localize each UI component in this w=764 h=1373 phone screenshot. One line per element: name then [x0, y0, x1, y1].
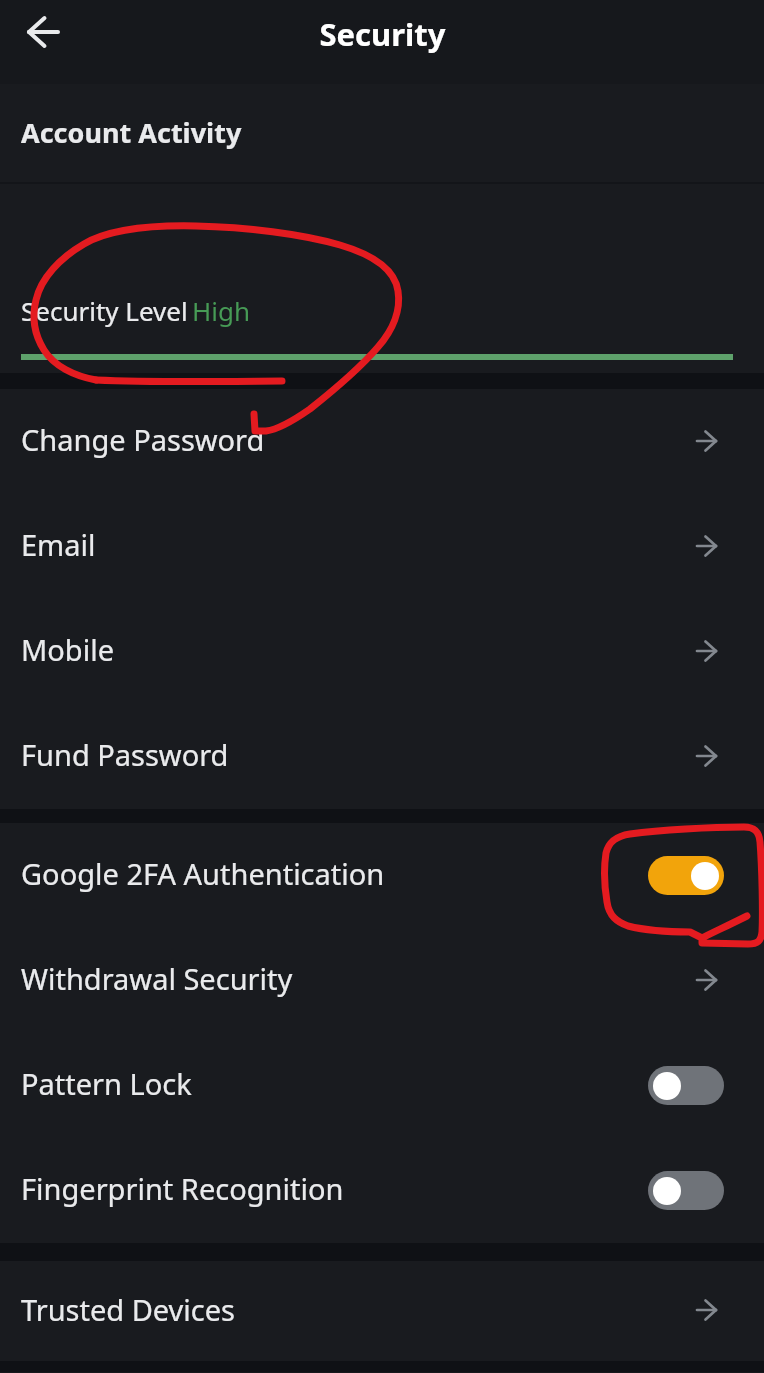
button[interactable]: Fingerprint Recognition: [0, 1138, 764, 1243]
staticText: Pattern Lock: [21, 1064, 192, 1103]
button[interactable]: Email: [0, 494, 764, 599]
staticText: Email: [21, 525, 96, 564]
staticText: Fund Password: [21, 735, 229, 774]
button[interactable]: Google 2FA Authentication on: [648, 856, 724, 895]
button[interactable]: Back: [19, 8, 67, 56]
button[interactable]: Change Password: [0, 389, 764, 494]
staticText: Fingerprint Recognition: [21, 1169, 344, 1208]
staticText: Change Password: [21, 420, 265, 459]
button[interactable]: Trusted Devices: [0, 1261, 764, 1361]
button[interactable]: Fingerprint Recognition off: [648, 1171, 724, 1210]
staticText: Security Level: [21, 293, 188, 328]
button[interactable]: Withdrawal Security: [0, 928, 764, 1033]
button[interactable]: Google 2FA Authentication: [0, 823, 764, 928]
staticText: Google 2FA Authentication: [21, 854, 385, 893]
staticText: Mobile: [21, 630, 115, 669]
staticText: Account Activity: [21, 114, 242, 151]
button[interactable]: Mobile: [0, 599, 764, 704]
staticText: Trusted Devices: [21, 1290, 235, 1329]
button[interactable]: Pattern Lock off: [648, 1066, 724, 1105]
staticText: Security: [319, 13, 446, 55]
button[interactable]: Pattern Lock: [0, 1033, 764, 1138]
staticText: Withdrawal Security: [21, 959, 293, 998]
staticText: High: [192, 293, 251, 328]
button[interactable]: Fund Password: [0, 704, 764, 809]
